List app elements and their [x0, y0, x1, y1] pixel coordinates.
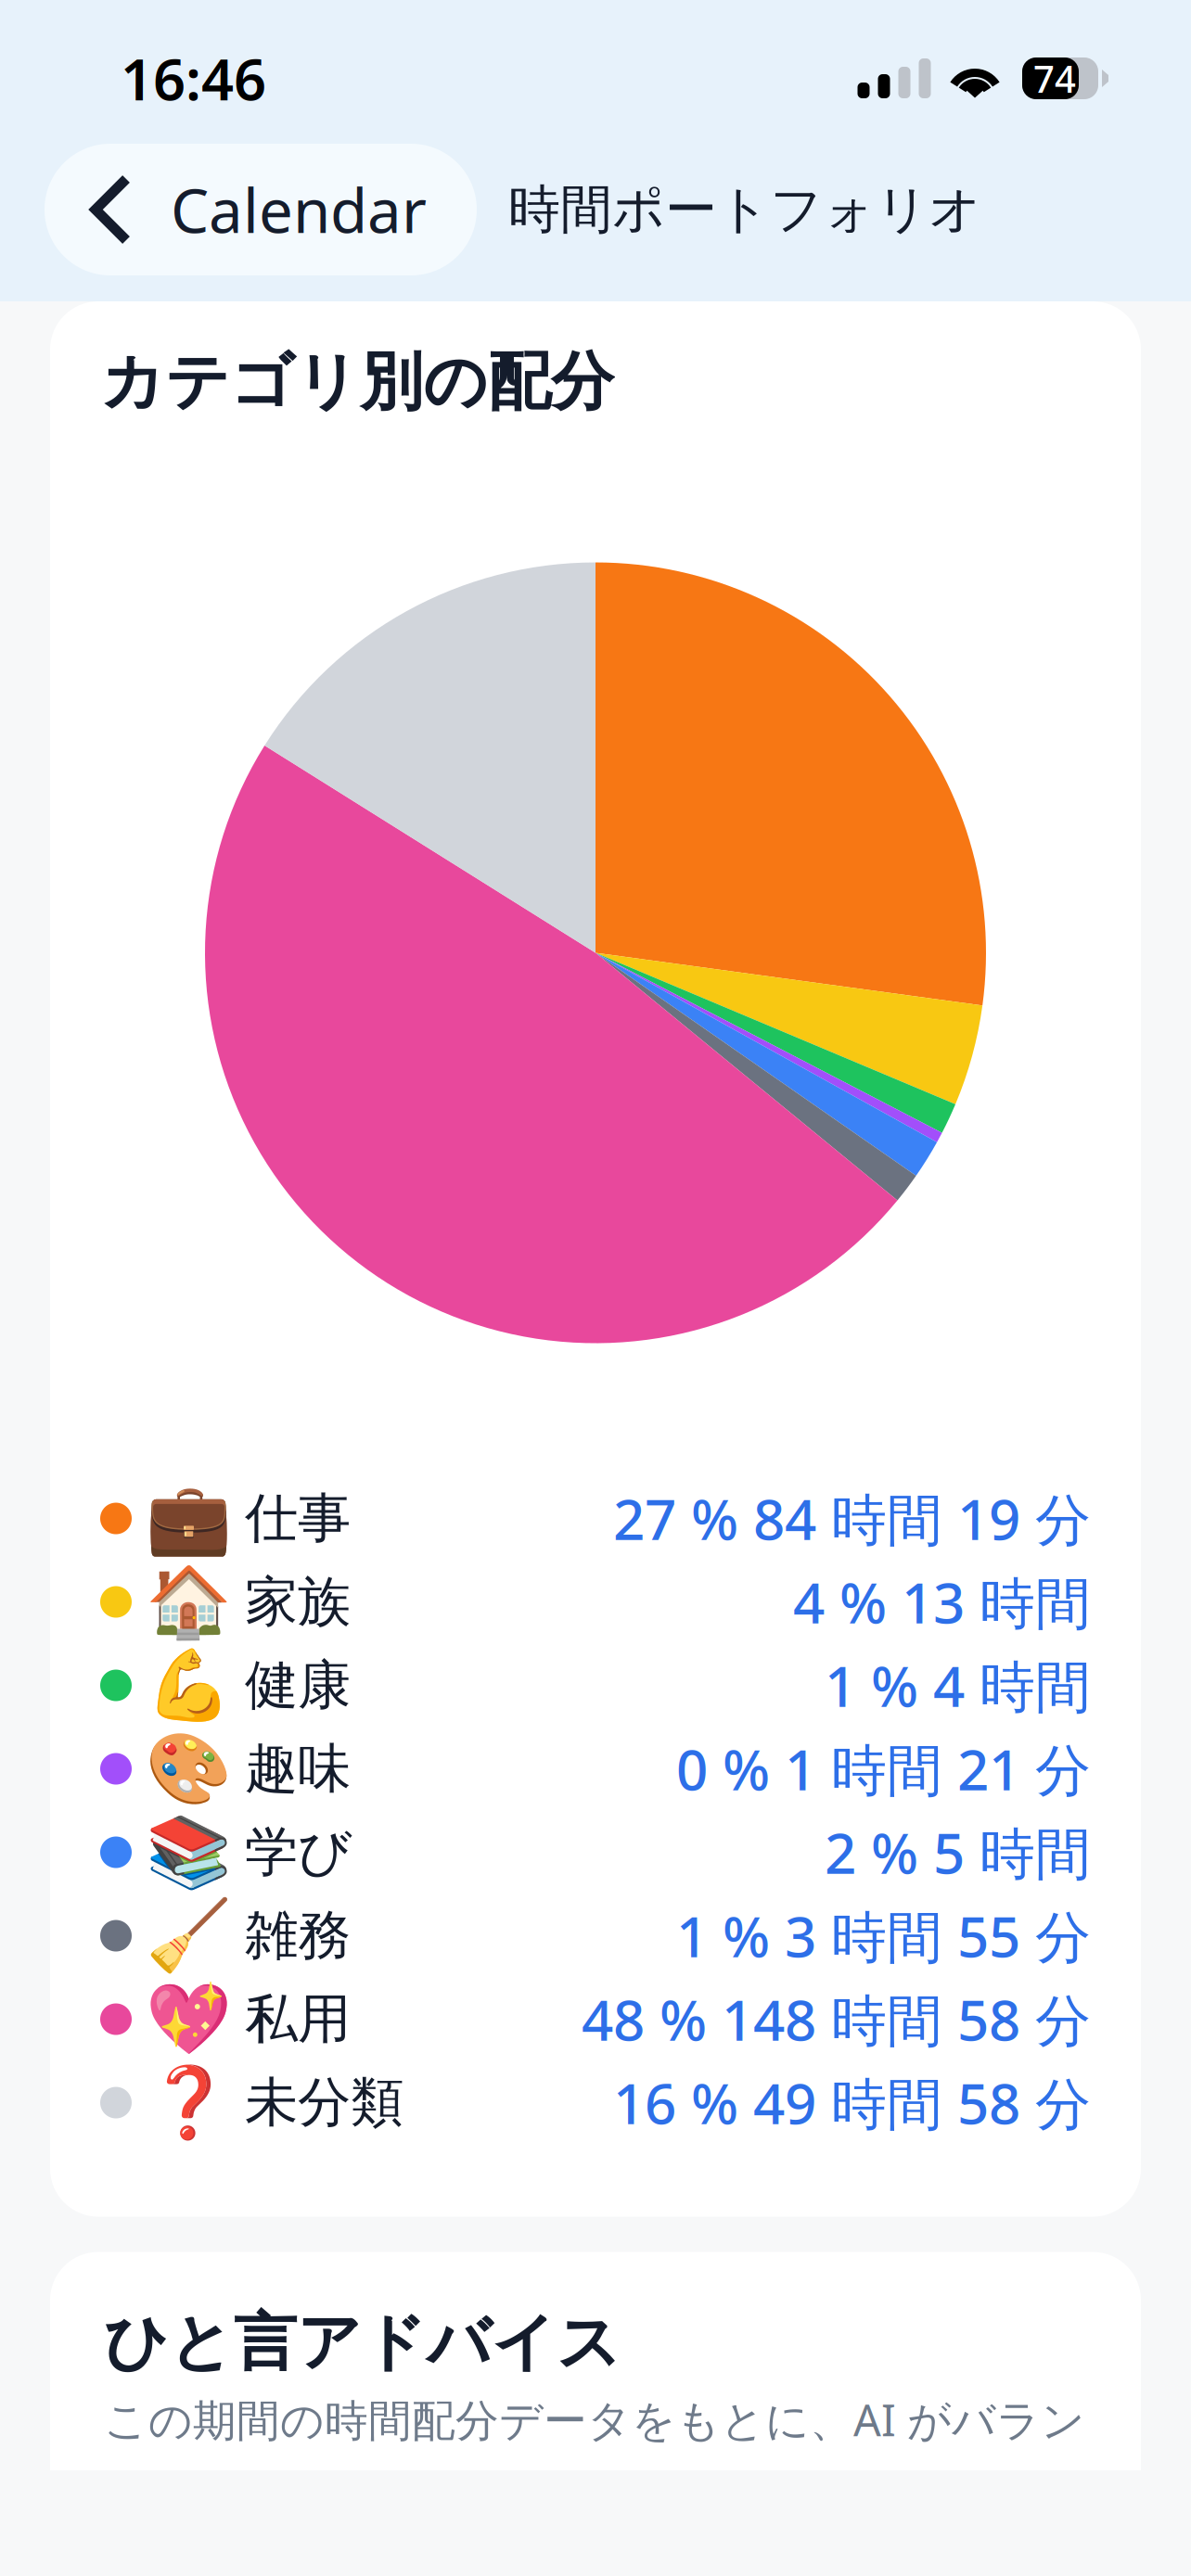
staticText: 私用 — [245, 1987, 351, 2052]
staticText: 🏠 — [145, 1562, 231, 1641]
staticText: 16 % 49 時間 58 分 — [613, 2066, 1091, 2140]
staticText: 4 % 13 時間 — [793, 1565, 1091, 1639]
staticText: 仕事 — [245, 1486, 351, 1551]
staticText: 2 % 5 時間 — [825, 1815, 1091, 1889]
button[interactable]: Calendar — [45, 144, 477, 275]
staticText: 74 — [1033, 54, 1076, 103]
staticText: 💪 — [145, 1646, 231, 1725]
staticText: 家族 — [245, 1569, 351, 1635]
staticText: 💖 — [145, 1980, 231, 2059]
staticText: 📚 — [145, 1813, 231, 1892]
staticText: 16:46 — [121, 41, 266, 116]
staticText: カテゴリ別の配分 — [100, 343, 614, 421]
staticText: この期間の時間配分データをもとに、AI がバラン — [104, 2391, 1085, 2448]
staticText: Calendar — [171, 169, 427, 250]
staticText: 💼 — [145, 1479, 231, 1558]
staticText: 1 % 4 時間 — [825, 1648, 1091, 1722]
staticText: 趣味 — [245, 1736, 351, 1801]
staticText: ❓ — [145, 2063, 231, 2142]
staticText: 🧹 — [145, 1896, 231, 1975]
staticText: 学び — [245, 1820, 352, 1885]
staticText: ひと言アドバイス — [104, 2304, 621, 2381]
staticText: 時間ポートフォリオ — [508, 178, 981, 241]
staticText: 0 % 1 時間 21 分 — [676, 1732, 1091, 1806]
staticText: 1 % 3 時間 55 分 — [676, 1899, 1091, 1973]
staticText: 27 % 84 時間 19 分 — [613, 1482, 1091, 1555]
staticText: 未分類 — [245, 2070, 403, 2135]
staticText: 🎨 — [145, 1729, 231, 1808]
staticText: 雑務 — [245, 1903, 351, 1968]
staticText: 48 % 148 時間 58 分 — [582, 1982, 1091, 2056]
staticText: 健康 — [245, 1653, 351, 1718]
